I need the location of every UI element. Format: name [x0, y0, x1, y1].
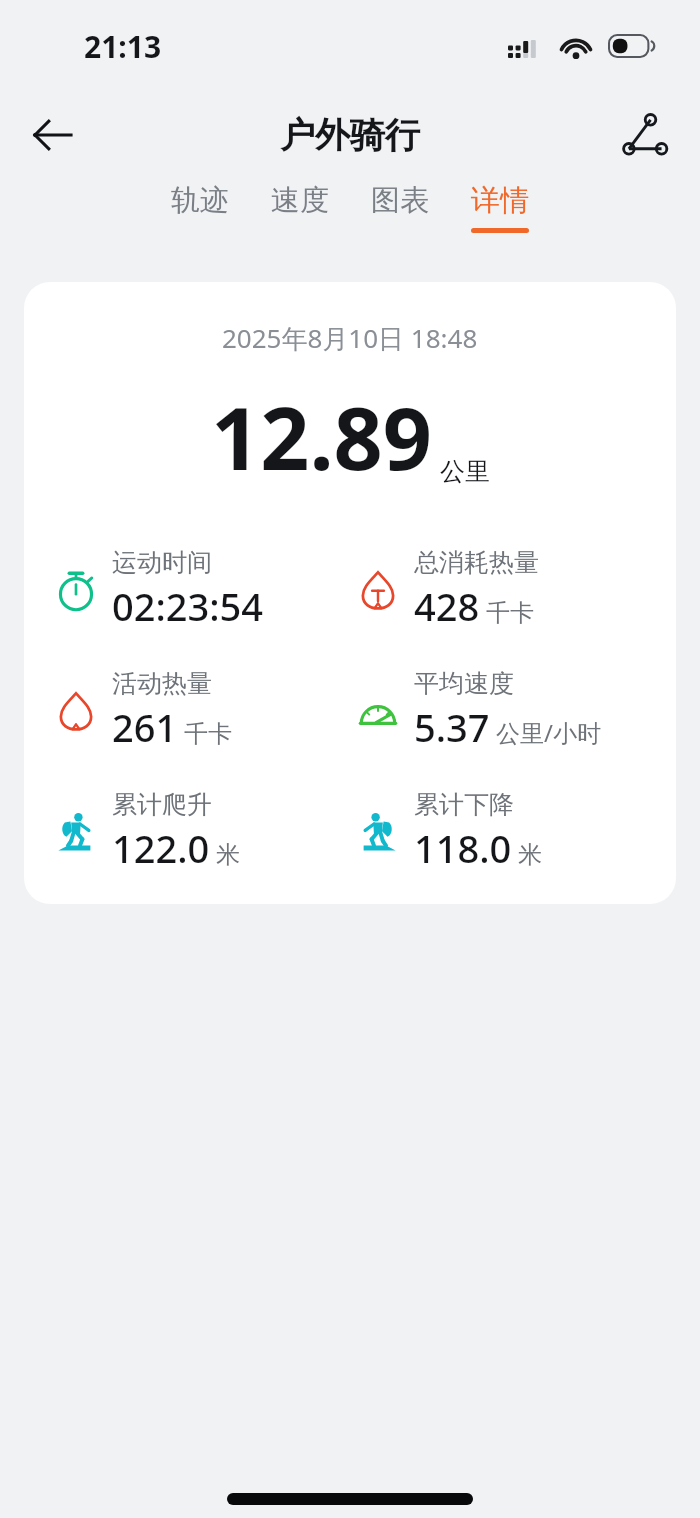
- staticText: 轨迹: [171, 182, 229, 219]
- staticText: 千卡: [486, 598, 534, 628]
- staticText: 米: [518, 840, 542, 870]
- staticText: 活动热量: [112, 668, 212, 699]
- staticText: 运动时间: [112, 547, 212, 578]
- staticText: 261: [112, 701, 178, 753]
- button[interactable]: 累计下降: [354, 789, 676, 874]
- staticText: 21:13: [84, 26, 162, 67]
- staticText: 02:23:54: [112, 580, 264, 632]
- staticText: 公里/小时: [496, 716, 601, 749]
- staticText: 图表: [371, 182, 429, 219]
- button[interactable]: 详情: [471, 182, 529, 233]
- staticText: 428: [414, 580, 480, 632]
- button[interactable]: 运动时间: [52, 547, 350, 632]
- staticText: 12.89: [211, 378, 432, 495]
- staticText: 米: [216, 840, 240, 870]
- staticText: 详情: [471, 182, 529, 219]
- button[interactable]: 平均速度: [354, 668, 676, 753]
- button[interactable]: Share: [612, 102, 678, 168]
- staticText: 5.37: [414, 701, 490, 753]
- staticText: 118.0: [414, 822, 512, 874]
- staticText: 总消耗热量: [414, 547, 539, 578]
- staticText: 累计下降: [414, 789, 514, 820]
- staticText: 速度: [271, 182, 329, 219]
- button[interactable]: Back: [20, 102, 86, 168]
- staticText: 累计爬升: [112, 789, 212, 820]
- staticText: 公里: [440, 456, 490, 487]
- button[interactable]: 轨迹: [171, 182, 229, 228]
- button[interactable]: 总消耗热量: [354, 547, 676, 632]
- button[interactable]: 累计爬升: [52, 789, 350, 874]
- staticText: 2025年8月10日 18:48: [222, 320, 478, 356]
- button[interactable]: 速度: [271, 182, 329, 228]
- staticText: 122.0: [112, 822, 210, 874]
- button[interactable]: 活动热量: [52, 668, 350, 753]
- staticText: 户外骑行: [280, 113, 420, 157]
- staticText: 平均速度: [414, 668, 514, 699]
- staticText: 千卡: [184, 719, 232, 749]
- button[interactable]: 图表: [371, 182, 429, 228]
